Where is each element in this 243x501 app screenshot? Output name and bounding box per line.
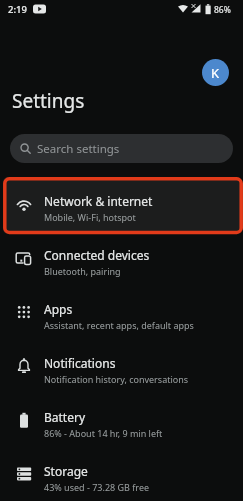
staticText: Notification history, conversations (44, 373, 189, 385)
button[interactable]: Notifications (0, 343, 243, 397)
staticText: Battery (44, 409, 86, 425)
staticText: 2:19 (8, 3, 27, 16)
staticText: K (211, 64, 220, 82)
staticText: Storage (44, 463, 88, 479)
button[interactable]: Connected devices (0, 235, 243, 289)
button[interactable]: Storage (0, 451, 243, 501)
staticText: 86% - About 14 hr, 9 min left (44, 427, 163, 439)
button[interactable]: Apps (0, 289, 243, 343)
staticText: Bluetooth, pairing (44, 265, 121, 277)
staticText: 86% (214, 4, 231, 16)
staticText: Connected devices (44, 247, 150, 263)
staticText: Network & internet (44, 193, 153, 209)
button[interactable]: K (202, 59, 229, 86)
staticText: Notifications (44, 355, 116, 371)
staticText: Search settings (37, 141, 120, 157)
button[interactable]: Network & internet (0, 181, 243, 235)
button[interactable]: Search settings (10, 134, 233, 163)
staticText: 43% used - 73.28 GB free (44, 481, 150, 493)
button[interactable]: Battery (0, 397, 243, 451)
staticText: Assistant, recent apps, default apps (44, 319, 194, 331)
staticText: Apps (44, 301, 73, 317)
staticText: Settings (12, 88, 85, 114)
staticText: Mobile, Wi-Fi, hotspot (44, 211, 136, 223)
